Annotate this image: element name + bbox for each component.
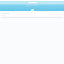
button[interactable]: Profile	[31, 9, 34, 12]
button[interactable]	[1, 13, 63, 16]
